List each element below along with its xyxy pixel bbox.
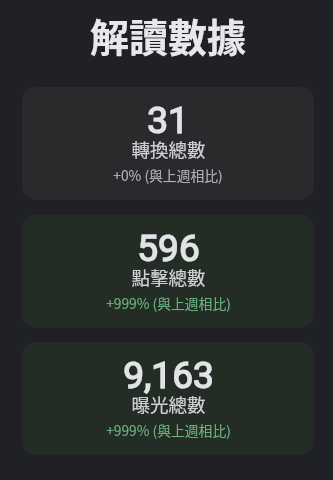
button[interactable]: 31 bbox=[22, 87, 314, 200]
staticText: 曝光總數 bbox=[131, 391, 206, 418]
staticText: +999% (與上週相比) bbox=[106, 293, 231, 313]
staticText: +999% (與上週相比) bbox=[106, 420, 231, 440]
staticText: 9,163 bbox=[123, 354, 214, 397]
staticText: 596 bbox=[137, 227, 200, 270]
staticText: 31 bbox=[147, 99, 189, 142]
button[interactable]: 596 bbox=[22, 215, 314, 328]
staticText: 解讀數據 bbox=[22, 7, 314, 63]
staticText: 轉換總數 bbox=[131, 136, 206, 163]
staticText: +0% (與上週相比) bbox=[113, 165, 223, 185]
staticText: 點擊總數 bbox=[131, 264, 206, 291]
button[interactable]: 9,163 bbox=[22, 342, 314, 455]
